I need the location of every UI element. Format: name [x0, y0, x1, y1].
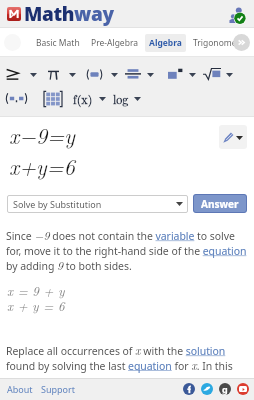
button[interactable]: Greater than or equal — [6, 69, 19, 80]
button[interactable]: Edit keypad — [219, 125, 247, 149]
button[interactable]: More options — [188, 69, 196, 80]
staticText: Basic Math — [36, 37, 80, 49]
button[interactable]: Pre-Algebra — [87, 34, 142, 52]
button[interactable]: More options — [225, 69, 233, 80]
staticText: x+y=6 — [9, 150, 75, 181]
button[interactable]: About — [5, 383, 35, 395]
button[interactable]: Account — [227, 5, 246, 24]
staticText: x = 9 + y x + y = 6 — [7, 281, 65, 315]
staticText: Mathway — [24, 1, 114, 27]
button[interactable]: Algebra — [145, 34, 186, 52]
button[interactable]: Trigonome — [189, 34, 241, 52]
button[interactable]: Basic Math — [32, 34, 84, 52]
staticText: Algebra — [149, 37, 182, 49]
staticText: g — [222, 383, 228, 395]
staticText: Answer — [201, 197, 239, 211]
button[interactable]: Mathway — [7, 1, 114, 27]
button[interactable]: Exponent — [168, 68, 183, 80]
button[interactable]: Scroll right — [233, 34, 250, 51]
button[interactable]: Square root — [203, 68, 221, 80]
staticText: Pre-Algebra — [91, 37, 138, 49]
button[interactable]: Parentheses — [86, 69, 103, 80]
button[interactable]: Pi — [48, 69, 59, 80]
button[interactable]: Facebook — [183, 383, 195, 395]
button[interactable]: More options — [29, 69, 37, 80]
button[interactable]: Solve by Substitution — [7, 195, 188, 213]
staticText: Trigonome — [193, 37, 237, 49]
button[interactable]: More options — [110, 69, 118, 80]
staticText: Replace all occurrences of x with the so… — [6, 341, 248, 373]
button[interactable]: More options — [133, 93, 141, 104]
button[interactable]: More options — [146, 69, 154, 80]
button[interactable]: Answer — [193, 194, 247, 213]
button[interactable]: Coordinates — [5, 93, 28, 104]
button[interactable]: Twitter — [201, 383, 213, 395]
staticText: x−9=y — [9, 119, 75, 150]
button[interactable]: More options — [98, 93, 106, 104]
button[interactable]: More options — [68, 69, 76, 80]
button[interactable]: YouTube — [237, 383, 249, 395]
button[interactable]: Google Plus — [219, 383, 231, 395]
button[interactable]: Matrix — [43, 91, 63, 107]
staticText: Solve by Substitution — [13, 198, 102, 210]
button[interactable]: Support — [39, 383, 77, 395]
staticText: Since −9 does not contain the variable t… — [6, 226, 248, 273]
button[interactable]: Fraction — [125, 68, 141, 80]
button[interactable]: Scroll left — [4, 34, 21, 51]
button[interactable]: f(x) — [73, 90, 93, 107]
button[interactable]: log — [113, 90, 129, 107]
